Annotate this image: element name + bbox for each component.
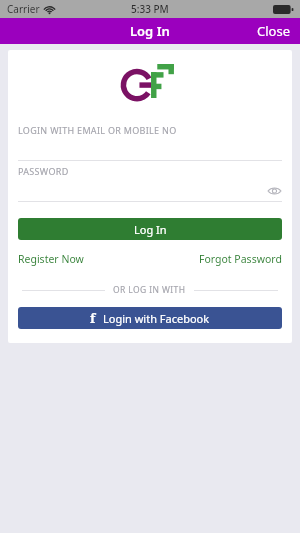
staticText: Register Now [18, 252, 84, 266]
staticText: PASSWORD [18, 165, 69, 177]
staticText: Login with Facebook [103, 311, 210, 326]
button[interactable]: LOGIN WITH EMAIL OR MOBILE NO [8, 120, 292, 161]
staticText: Close [257, 22, 290, 40]
button[interactable]: Close [247, 18, 300, 44]
staticText: OR LOG IN WITH [113, 284, 186, 296]
staticText: Carrier [7, 2, 40, 16]
staticText: 5:33 PM [131, 2, 169, 16]
button[interactable]: Register Now [18, 252, 84, 266]
staticText: f [90, 309, 96, 327]
button[interactable]: Forgot Password [199, 252, 282, 266]
staticText: LOGIN WITH EMAIL OR MOBILE NO [18, 124, 177, 136]
button[interactable]: Show password [266, 183, 282, 199]
staticText: Log In [130, 22, 170, 40]
staticText: Log In [134, 222, 167, 237]
button[interactable]: Log In [18, 218, 282, 240]
staticText: Forgot Password [199, 252, 282, 266]
button[interactable]: f [18, 307, 282, 329]
button[interactable]: PASSWORD [8, 161, 292, 202]
